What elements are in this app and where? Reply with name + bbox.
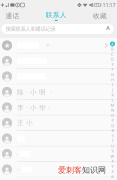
staticText: 联系人 — [46, 11, 67, 19]
button[interactable]: L — [110, 98, 115, 103]
staticText: · · — [17, 166, 20, 173]
staticText: T — [111, 138, 113, 143]
button[interactable] — [0, 69, 117, 84]
button[interactable]: R — [110, 128, 115, 133]
button[interactable] — [0, 131, 117, 146]
button[interactable]: G — [110, 72, 115, 77]
button[interactable]: J — [110, 87, 115, 92]
button[interactable]: H — [110, 77, 115, 82]
staticText: # — [111, 174, 114, 179]
button[interactable]: W — [110, 154, 115, 159]
staticText: 11:17 — [102, 1, 115, 9]
button[interactable]: F — [110, 67, 115, 72]
staticText: H — [111, 77, 114, 82]
staticText: 陈 · 小 明 · — [17, 87, 52, 96]
staticText: P — [111, 118, 113, 123]
button[interactable] — [0, 53, 117, 69]
staticText: A — [111, 41, 114, 47]
staticText: 爱刺客 — [58, 165, 82, 175]
staticText: 知识网 — [82, 165, 106, 175]
button[interactable]: O — [110, 113, 115, 118]
staticText: 通话 — [5, 12, 19, 20]
staticText: N — [111, 108, 114, 113]
staticText: Z — [111, 169, 113, 174]
button[interactable]: N — [110, 108, 115, 113]
staticText: G — [111, 72, 114, 77]
button[interactable]: · — [0, 146, 117, 162]
staticText: F — [111, 67, 113, 72]
staticText: K — [111, 92, 113, 98]
staticText: J — [112, 87, 113, 92]
button[interactable]: 李 · 小 华 · — [0, 100, 117, 115]
button[interactable]: E — [110, 62, 115, 67]
button[interactable]: C — [110, 52, 115, 57]
staticText: M — [110, 102, 114, 108]
button[interactable]: D — [110, 57, 115, 62]
staticText: · — [17, 150, 18, 157]
staticText: R — [111, 128, 113, 133]
button[interactable]: · · — [0, 162, 117, 177]
button[interactable]: 收藏 — [88, 10, 112, 22]
button[interactable]: Q — [110, 123, 115, 128]
staticText: 王 小 — [17, 119, 33, 127]
button[interactable]: 王 小 — [0, 115, 117, 131]
button[interactable]: M — [110, 103, 115, 108]
button[interactable]: Y — [110, 164, 115, 169]
staticText: S — [111, 133, 113, 138]
staticText: Y — [111, 164, 113, 169]
button[interactable]: 通话 — [0, 10, 24, 22]
staticText: W — [110, 153, 114, 159]
staticText: Q — [111, 123, 114, 128]
staticText: C — [111, 51, 114, 57]
button[interactable]: 陈 · 小 明 · — [0, 84, 117, 100]
staticText: B — [111, 46, 114, 52]
button[interactable]: K — [110, 92, 115, 97]
staticText: U — [111, 143, 114, 149]
button[interactable]: V — [110, 148, 115, 153]
staticText: X — [111, 159, 113, 164]
button[interactable]: ★ — [0, 38, 117, 53]
button[interactable]: T — [110, 138, 115, 143]
staticText: V — [111, 148, 113, 154]
staticText: 收藏 — [93, 12, 107, 20]
button[interactable]: B — [110, 47, 115, 52]
staticText: 李 · 小 华 · — [17, 103, 50, 112]
staticText: O — [111, 113, 114, 118]
button[interactable]: # — [110, 174, 115, 179]
button[interactable]: I — [110, 82, 115, 87]
staticText: 个 — [46, 43, 50, 48]
button[interactable]: A — [110, 41, 115, 46]
button[interactable]: X — [110, 159, 115, 164]
staticText: D — [111, 57, 114, 62]
staticText: E — [111, 62, 113, 67]
staticText: I — [112, 82, 113, 87]
button[interactable]: U — [110, 143, 115, 148]
staticText: L — [111, 97, 113, 103]
button[interactable]: P — [110, 118, 115, 123]
button[interactable]: Z — [110, 169, 115, 174]
button[interactable]: 联系人 — [43, 10, 69, 22]
staticText: 93 — [95, 3, 99, 7]
button[interactable]: 搜索联系人和通话记录 — [0, 22, 117, 38]
staticText: ★ — [3, 41, 10, 50]
button[interactable]: S — [110, 133, 115, 138]
staticText: 搜索联系人和通话记录 — [5, 26, 55, 32]
